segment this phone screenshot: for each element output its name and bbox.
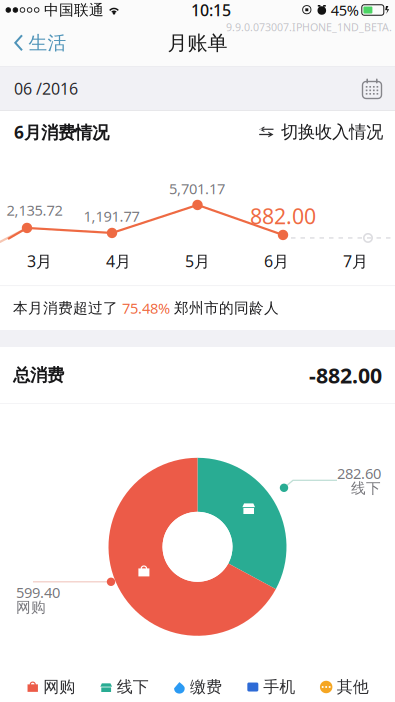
staticText: 1,191.77 [83, 206, 139, 226]
button[interactable]: 手机 [244, 673, 297, 701]
button[interactable]: 线下 [98, 673, 151, 701]
staticText: 网购 [16, 598, 46, 616]
button[interactable]: Choose month [361, 77, 383, 99]
staticText: 7月 [343, 250, 368, 271]
staticText: 2,135.72 [6, 200, 62, 220]
button[interactable]: 切换收入情况 [259, 121, 383, 143]
staticText: 10:15 [191, 0, 231, 21]
staticText: 切换收入情况 [281, 121, 383, 143]
staticText: 本月消费超过了 [13, 299, 122, 317]
staticText: 599.40 [16, 583, 60, 602]
staticText: -882.00 [309, 361, 382, 389]
staticText: 总消费 [13, 365, 64, 386]
staticText: 75.48% [122, 298, 170, 318]
staticText: 9.9.0.073007.IPHONE_1ND_BETA. [226, 20, 392, 34]
staticText: 郑州市的同龄人 [170, 299, 279, 317]
staticText: 6月 [264, 250, 289, 271]
staticText: 生活 [28, 31, 66, 54]
button[interactable]: 其他 [318, 673, 371, 701]
staticText: 882.00 [250, 202, 316, 230]
staticText: 月账单 [167, 31, 227, 55]
staticText: 中国联通 [44, 1, 104, 19]
staticText: 282.60 [337, 464, 381, 483]
staticText: 网购 [43, 677, 75, 697]
staticText: 4月 [106, 250, 131, 271]
staticText: 3月 [27, 250, 52, 271]
staticText: 线下 [351, 479, 381, 497]
staticText: 缴费 [190, 677, 222, 697]
staticText: 手机 [263, 677, 295, 697]
button[interactable]: 缴费 [171, 673, 224, 701]
staticText: 45% [331, 0, 359, 20]
staticText: 5月 [185, 250, 210, 271]
staticText: 线下 [117, 677, 149, 697]
staticText: 06 /2016 [14, 78, 78, 99]
staticText: 6月消费情况 [14, 120, 109, 143]
staticText: 其他 [337, 677, 369, 697]
staticText: 5,701.17 [169, 179, 225, 198]
button[interactable]: 网购 [24, 673, 77, 701]
button[interactable]: 生活 [0, 20, 76, 66]
